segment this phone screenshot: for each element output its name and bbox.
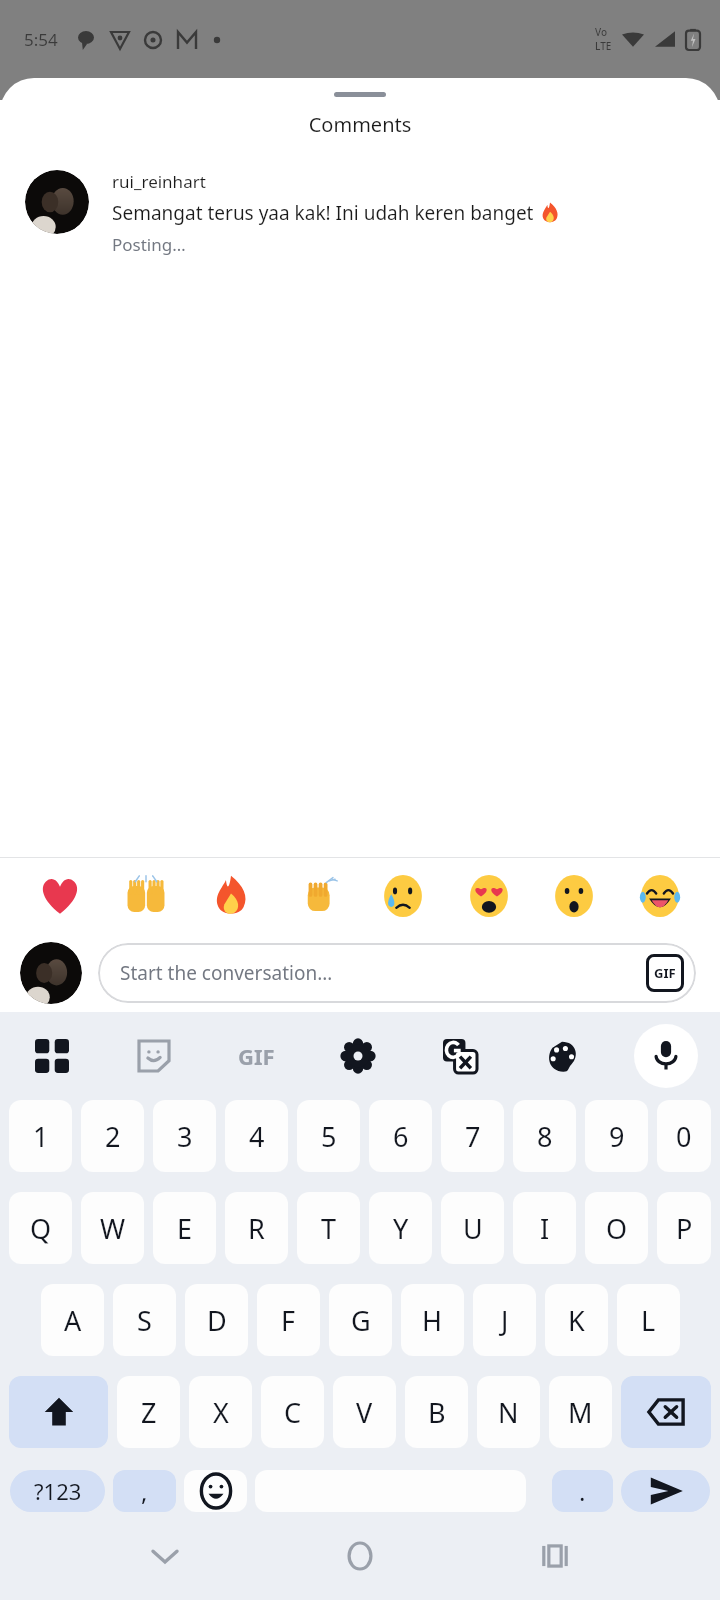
button[interactable]: 0 bbox=[657, 1100, 711, 1172]
button[interactable]: Recents bbox=[525, 1526, 585, 1586]
button[interactable]: Heart reaction bbox=[34, 870, 86, 922]
staticText: 5:54 bbox=[24, 28, 58, 51]
button[interactable]: GIF bbox=[646, 954, 684, 992]
button[interactable]: H bbox=[401, 1284, 464, 1356]
button[interactable]: Keyboard apps bbox=[22, 1026, 82, 1086]
button[interactable]: D bbox=[185, 1284, 248, 1356]
staticText: A bbox=[64, 1302, 82, 1339]
button[interactable]: C bbox=[261, 1376, 324, 1448]
button[interactable]: . bbox=[552, 1470, 613, 1512]
staticText: 5 bbox=[321, 1118, 337, 1155]
staticText: 9 bbox=[609, 1118, 625, 1155]
button[interactable]: ?123 bbox=[10, 1470, 105, 1512]
staticText: F bbox=[281, 1302, 296, 1339]
button[interactable]: F bbox=[257, 1284, 320, 1356]
button[interactable]: key bbox=[9, 1376, 108, 1448]
button[interactable]: O bbox=[585, 1192, 648, 1264]
staticText: 4 bbox=[249, 1118, 265, 1155]
staticText: GIF bbox=[654, 964, 676, 982]
staticText: Semangat terus yaa kak! Ini udah keren b… bbox=[112, 200, 539, 226]
button[interactable]: M bbox=[549, 1376, 612, 1448]
button[interactable]: N bbox=[477, 1376, 540, 1448]
button[interactable]: K bbox=[545, 1284, 608, 1356]
button[interactable]: Y bbox=[369, 1192, 432, 1264]
staticText: Q bbox=[30, 1210, 52, 1247]
button[interactable]: Hide keyboard bbox=[135, 1526, 195, 1586]
button[interactable]: R bbox=[225, 1192, 288, 1264]
staticText: V bbox=[356, 1394, 373, 1431]
button[interactable]: X bbox=[189, 1376, 252, 1448]
button[interactable]: 8 bbox=[513, 1100, 576, 1172]
staticText: C bbox=[284, 1394, 302, 1431]
button[interactable]: I bbox=[513, 1192, 576, 1264]
button[interactable]: Surprised reaction bbox=[548, 870, 600, 922]
staticText: H bbox=[422, 1302, 443, 1339]
button[interactable]: Home bbox=[330, 1526, 390, 1586]
button[interactable]: Love reaction bbox=[463, 870, 515, 922]
staticText: 6 bbox=[393, 1118, 409, 1155]
button[interactable]: B bbox=[405, 1376, 468, 1448]
staticText: L bbox=[641, 1302, 656, 1339]
staticText: R bbox=[248, 1210, 265, 1247]
button[interactable]: G bbox=[329, 1284, 392, 1356]
button[interactable]: Settings bbox=[328, 1026, 388, 1086]
button[interactable]: J bbox=[473, 1284, 536, 1356]
button[interactable]: T bbox=[297, 1192, 360, 1264]
button[interactable]: 5 bbox=[297, 1100, 360, 1172]
button[interactable]: V bbox=[333, 1376, 396, 1448]
staticText: 7 bbox=[465, 1118, 481, 1155]
staticText: W bbox=[100, 1210, 126, 1247]
button[interactable]: GIF search bbox=[226, 1026, 286, 1086]
button[interactable]: Start the conversation… bbox=[98, 943, 696, 1003]
button[interactable]: 2 bbox=[81, 1100, 144, 1172]
button[interactable]: key bbox=[184, 1470, 247, 1512]
staticText: 1 bbox=[33, 1118, 49, 1155]
button[interactable]: A bbox=[41, 1284, 104, 1356]
staticText: 0 bbox=[676, 1118, 692, 1155]
staticText: J bbox=[501, 1302, 509, 1339]
staticText: 2 bbox=[105, 1118, 121, 1155]
button[interactable]: L bbox=[617, 1284, 680, 1356]
button[interactable]: U bbox=[441, 1192, 504, 1264]
staticText: 3 bbox=[177, 1118, 193, 1155]
button[interactable]: Voice input bbox=[634, 1024, 698, 1088]
button[interactable]: E bbox=[153, 1192, 216, 1264]
staticText: N bbox=[498, 1394, 519, 1431]
button[interactable]: Themes bbox=[532, 1026, 592, 1086]
staticText: Z bbox=[141, 1394, 157, 1431]
staticText: rui_reinhart bbox=[112, 170, 206, 193]
button[interactable]: 1 bbox=[9, 1100, 72, 1172]
button[interactable]: key bbox=[621, 1376, 711, 1448]
button[interactable]: Stickers bbox=[124, 1026, 184, 1086]
staticText: LTE bbox=[595, 39, 612, 53]
staticText: GIF bbox=[238, 1041, 275, 1071]
button[interactable]: Laughing reaction bbox=[634, 870, 686, 922]
button[interactable]: Fire reaction bbox=[205, 870, 257, 922]
staticText: T bbox=[321, 1210, 337, 1247]
staticText: 8 bbox=[537, 1118, 553, 1155]
button[interactable]: key bbox=[621, 1470, 710, 1512]
staticText: S bbox=[137, 1302, 152, 1339]
button[interactable]: Clap reaction bbox=[291, 870, 343, 922]
button[interactable]: Z bbox=[117, 1376, 180, 1448]
button[interactable]: S bbox=[113, 1284, 176, 1356]
button[interactable]: Q bbox=[9, 1192, 72, 1264]
staticText: M bbox=[568, 1394, 593, 1431]
button[interactable]: 4 bbox=[225, 1100, 288, 1172]
button[interactable]: rui_reinhart bbox=[0, 170, 720, 256]
staticText: O bbox=[606, 1210, 628, 1247]
staticText: Vo bbox=[595, 25, 608, 39]
button[interactable]: Raising hands reaction bbox=[120, 870, 172, 922]
button[interactable]: Translate bbox=[430, 1026, 490, 1086]
button[interactable]: P bbox=[657, 1192, 711, 1264]
button[interactable]: 9 bbox=[585, 1100, 648, 1172]
staticText: ?123 bbox=[34, 1476, 82, 1506]
button[interactable]: 7 bbox=[441, 1100, 504, 1172]
button[interactable]: Sad reaction bbox=[377, 870, 429, 922]
button[interactable]: 3 bbox=[153, 1100, 216, 1172]
button[interactable]: W bbox=[81, 1192, 144, 1264]
staticText: , bbox=[141, 1475, 148, 1508]
button[interactable]: 6 bbox=[369, 1100, 432, 1172]
button[interactable]: , bbox=[113, 1470, 176, 1512]
